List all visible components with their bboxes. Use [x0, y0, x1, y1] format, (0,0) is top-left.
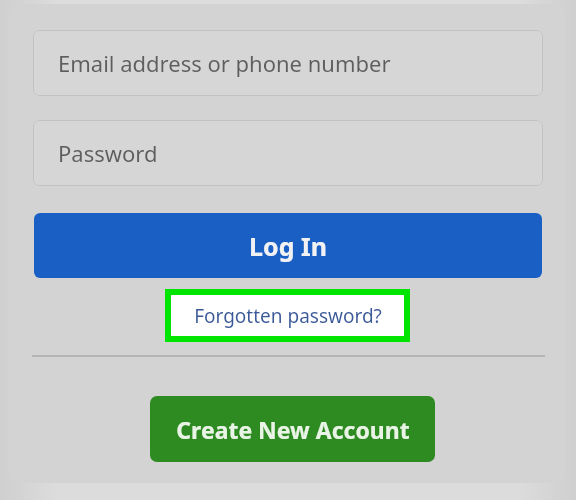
staticText: Password	[58, 138, 158, 168]
button[interactable]: Create New Account	[150, 396, 435, 462]
staticText: Create New Account	[176, 414, 410, 445]
button[interactable]: Forgotten password?	[171, 295, 404, 336]
button[interactable]: Password	[33, 120, 543, 186]
staticText: Email address or phone number	[58, 48, 391, 78]
button[interactable]: Email address or phone number	[33, 30, 543, 96]
button[interactable]: Log In	[34, 213, 542, 278]
staticText: Forgotten password?	[194, 303, 382, 329]
staticText: Log In	[249, 229, 327, 263]
